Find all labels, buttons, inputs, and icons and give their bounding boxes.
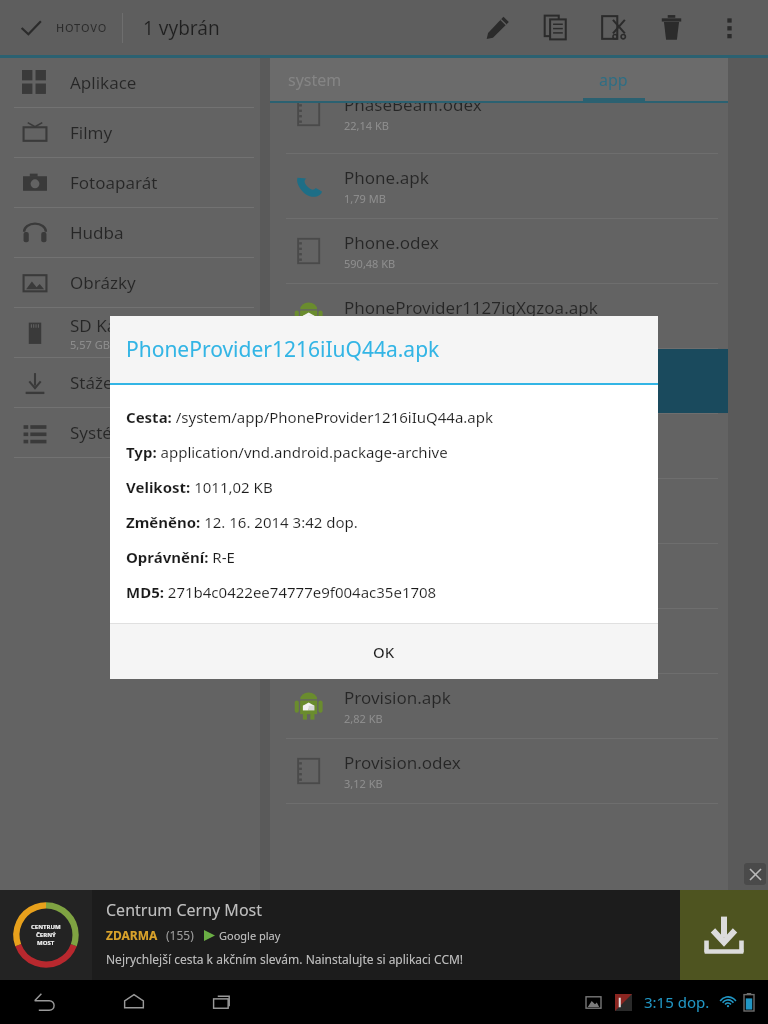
button[interactable]: Back — [22, 980, 66, 1024]
staticText: ZDARMA — [106, 927, 158, 943]
staticText: 2,82 KB — [344, 711, 383, 726]
button[interactable]: PicoTts.odex — [270, 609, 728, 673]
staticText: Velikost: 1011,02 KB — [126, 477, 273, 497]
staticText: 23,41 KB — [344, 451, 389, 466]
staticText: Stáže — [70, 371, 113, 394]
button[interactable]: Phone.odex — [270, 219, 728, 283]
staticText: PhaseBeam.odex — [344, 103, 482, 116]
button[interactable]: Copy — [526, 0, 584, 55]
staticText: 1 vybrán — [143, 15, 220, 41]
staticText: Centrum Cerny Most — [106, 899, 263, 921]
staticText: Google play — [219, 928, 281, 943]
button[interactable]: Fotoaparát — [0, 158, 260, 207]
staticText: 3,12 KB — [344, 776, 383, 791]
button[interactable]: PhaseBeam.odex — [270, 103, 728, 138]
staticText: Aplikace — [70, 71, 137, 94]
button[interactable]: PicoTts.apk — [270, 544, 728, 608]
staticText: Změněno: 12. 16. 2014 3:42 dop. — [126, 512, 358, 532]
button[interactable]: Hudba — [0, 208, 260, 257]
staticText: 590,48 KB — [344, 256, 396, 271]
staticText: CENTRUM — [31, 923, 61, 931]
button[interactable]: Delete — [642, 0, 700, 55]
button[interactable]: HOTOVO — [0, 0, 122, 55]
staticText: ČERNÝ — [36, 931, 56, 939]
staticText: PhoneProvider1127igXgzoa.apk — [344, 296, 598, 319]
staticText: Obrázky — [70, 271, 136, 294]
staticText: Phone.odex — [344, 231, 439, 254]
staticText: Systém — [70, 421, 128, 444]
staticText: HOTOVO — [56, 20, 108, 35]
button[interactable]: Stáže — [0, 358, 260, 407]
button[interactable]: More options — [700, 0, 758, 55]
button[interactable]: Home — [112, 980, 156, 1024]
staticText: Phone.apk — [344, 166, 429, 189]
button[interactable]: Systém — [0, 408, 260, 457]
staticText: 22,14 KB — [344, 118, 389, 133]
staticText: 5,57 GB — [70, 337, 110, 352]
staticText: Fotoaparát — [70, 171, 158, 194]
staticText: Provision.apk — [344, 686, 451, 709]
button[interactable]: Cut — [584, 0, 642, 55]
staticText: 3:15 dop. — [644, 992, 710, 1012]
staticText: 8,23 MB — [344, 516, 386, 531]
button[interactable]: PhoneProvider1216iIuQ44a.odex — [270, 414, 728, 478]
staticText: 10,04 KB — [344, 581, 389, 596]
staticText: app — [599, 69, 628, 91]
staticText: Oprávnění: R-E — [126, 547, 235, 567]
staticText: 1,79 MB — [344, 191, 386, 206]
button[interactable]: Phone.apk — [270, 154, 728, 218]
staticText: Typ: application/vnd.android.package-arc… — [126, 442, 448, 462]
button[interactable]: Aplikace — [0, 58, 260, 107]
button[interactable]: Install — [680, 890, 768, 980]
button[interactable]: Obrázky — [0, 258, 260, 307]
staticText: PhoneProvider1216iIuQ44a.odex — [344, 426, 608, 449]
staticText: Hudba — [70, 221, 124, 244]
staticText: MOST — [37, 939, 55, 947]
button[interactable]: system — [270, 58, 499, 101]
staticText: Nejrychlejší cesta k akčním slevám. Nain… — [106, 951, 464, 967]
button[interactable]: Close ad — [744, 863, 766, 885]
staticText: Cesta: /system/app/PhoneProvider1216iIuQ… — [126, 407, 494, 427]
button[interactable]: Provision.apk — [270, 674, 728, 738]
button[interactable]: Edit — [468, 0, 526, 55]
button[interactable]: SD Karta — [0, 308, 260, 357]
button[interactable]: Provision.odex — [270, 739, 728, 803]
button[interactable]: Filmy — [0, 108, 260, 157]
staticText: Filmy — [70, 121, 113, 144]
button[interactable]: Recent apps — [202, 980, 246, 1024]
staticText: system — [288, 69, 342, 91]
button[interactable]: CENTRUM — [0, 890, 768, 980]
button[interactable]: PhoneProvider1127igXgzoa.apk — [270, 284, 728, 348]
staticText: 17,82 KB — [344, 646, 389, 661]
staticText: PhoneProvider1216iIuQ44a.apk — [344, 361, 598, 384]
button[interactable]: Phonesky.apk — [270, 479, 728, 543]
staticText: (155) — [166, 927, 194, 943]
staticText: PhoneProvider1216iIuQ44a.apk — [126, 335, 440, 364]
staticText: MD5: 271b4c0422ee74777e9f004ac35e1708 — [126, 582, 437, 602]
button[interactable]: app — [499, 58, 728, 101]
staticText: SD Karta — [70, 314, 139, 337]
staticText: PicoTts.odex — [344, 621, 445, 644]
button[interactable]: OK — [110, 624, 658, 679]
button[interactable]: PhoneProvider1216iIuQ44a.apk — [270, 349, 728, 413]
staticText: OK — [373, 642, 395, 662]
staticText: Provision.odex — [344, 751, 461, 774]
